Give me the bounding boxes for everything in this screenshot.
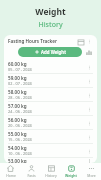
staticText: Add Weight bbox=[41, 49, 66, 55]
staticText: 28 - 06 - 2024 bbox=[8, 95, 32, 100]
button[interactable]: 59.00 kg bbox=[4, 74, 97, 87]
button[interactable]: 56.00 kg bbox=[4, 116, 97, 129]
staticText: History bbox=[45, 173, 57, 178]
staticText: 02 - 07 - 2024 bbox=[8, 81, 32, 86]
staticText: 56.00 kg bbox=[8, 117, 27, 123]
staticText: Fasting Hours Tracker bbox=[8, 38, 76, 44]
button[interactable]: Add Weight bbox=[18, 47, 82, 57]
button[interactable]: 57.00 kg bbox=[4, 102, 97, 115]
button[interactable]: Chart bbox=[85, 48, 93, 56]
staticText: 57.00 kg bbox=[8, 103, 27, 109]
button[interactable]: Row options bbox=[85, 133, 93, 141]
staticText: 05 - 07 - 2024 bbox=[8, 67, 32, 72]
button[interactable]: Row options bbox=[85, 147, 93, 155]
staticText: Home bbox=[6, 173, 16, 178]
staticText: 60.00 kg bbox=[8, 61, 27, 67]
button[interactable]: Fasts bbox=[21, 163, 41, 180]
staticText: 58.00 kg bbox=[8, 89, 27, 95]
button[interactable]: 54.00 kg bbox=[4, 144, 97, 157]
button[interactable]: Row options bbox=[85, 105, 93, 113]
button[interactable]: More options bbox=[85, 37, 93, 45]
button[interactable]: Row options bbox=[85, 158, 93, 163]
button[interactable]: Row options bbox=[85, 63, 93, 71]
button[interactable]: Weight bbox=[61, 163, 81, 180]
button[interactable]: Home bbox=[0, 163, 21, 180]
staticText: 20 - 06 - 2024 bbox=[8, 123, 32, 128]
staticText: Fasts bbox=[27, 173, 36, 178]
button[interactable]: 60.00 kg bbox=[4, 60, 97, 73]
button[interactable]: 55.00 kg bbox=[4, 130, 97, 143]
staticText: 10 - 06 - 2024 bbox=[8, 151, 32, 156]
staticText: 54.00 kg bbox=[8, 145, 27, 151]
button[interactable]: More bbox=[81, 163, 101, 180]
button[interactable]: 53.00 kg bbox=[4, 158, 97, 163]
staticText: 15 - 06 - 2024 bbox=[8, 137, 32, 142]
staticText: Weight bbox=[0, 6, 101, 18]
staticText: History bbox=[0, 20, 101, 30]
staticText: Weight bbox=[65, 173, 77, 178]
button[interactable]: Row options bbox=[85, 119, 93, 127]
staticText: 59.00 kg bbox=[8, 75, 27, 81]
button[interactable]: Row options bbox=[85, 91, 93, 99]
button[interactable]: 58.00 kg bbox=[4, 88, 97, 101]
button[interactable]: History bbox=[41, 163, 61, 180]
staticText: 55.00 kg bbox=[8, 131, 27, 137]
staticText: 24 - 06 - 2024 bbox=[8, 109, 32, 114]
button[interactable]: Row options bbox=[85, 77, 93, 85]
staticText: 53.00 kg bbox=[8, 158, 27, 163]
button[interactable]: Calendar bbox=[76, 37, 85, 46]
staticText: More bbox=[87, 173, 96, 178]
